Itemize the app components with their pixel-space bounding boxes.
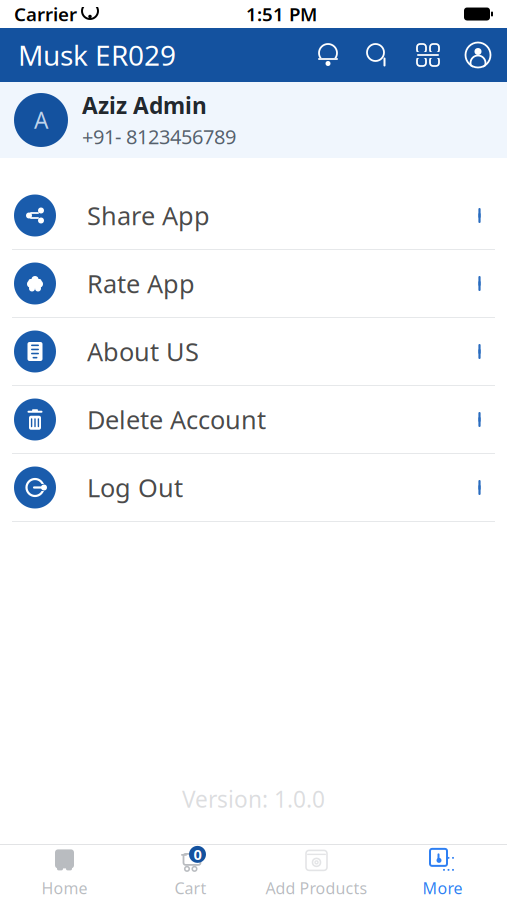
- button[interactable]: Home: [1, 845, 127, 900]
- button[interactable]: Profile: [463, 38, 493, 72]
- button[interactable]: Notifications: [313, 38, 343, 72]
- staticText: Cart: [174, 877, 206, 899]
- button[interactable]: Search: [363, 38, 393, 72]
- staticText: Musk ER029: [18, 36, 176, 74]
- staticText: A: [34, 105, 48, 135]
- button[interactable]: More: [379, 845, 505, 900]
- staticText: Rate App: [87, 267, 195, 300]
- staticText: Add Products: [265, 877, 367, 899]
- button[interactable]: Share App: [0, 182, 507, 249]
- staticText: 1:51 PM: [246, 2, 317, 26]
- staticText: Aziz Admin: [82, 90, 207, 120]
- staticText: 0: [193, 845, 201, 864]
- button[interactable]: Rate App: [0, 250, 507, 317]
- staticText: Version: 1.0.0: [182, 784, 325, 814]
- button[interactable]: 0: [127, 845, 253, 900]
- staticText: +91- 8123456789: [82, 123, 236, 150]
- button[interactable]: A: [0, 82, 507, 158]
- button[interactable]: Delete Account: [0, 386, 507, 453]
- button[interactable]: Scan: [413, 38, 443, 72]
- staticText: More: [422, 877, 462, 899]
- button[interactable]: Add Products: [253, 845, 379, 900]
- staticText: Share App: [87, 199, 210, 232]
- staticText: Log Out: [87, 471, 183, 504]
- staticText: Home: [41, 877, 87, 899]
- staticText: Delete Account: [87, 403, 266, 436]
- button[interactable]: Log Out: [0, 454, 507, 521]
- staticText: About US: [87, 335, 199, 368]
- staticText: Carrier: [14, 2, 77, 26]
- button[interactable]: About US: [0, 318, 507, 385]
